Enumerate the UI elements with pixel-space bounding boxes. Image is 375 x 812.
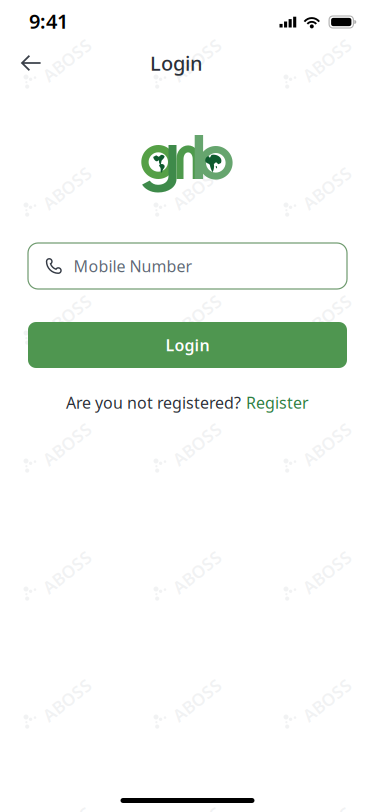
staticText: ABOSS xyxy=(168,432,225,455)
staticText: ABOSS xyxy=(168,304,225,327)
staticText: ABOSS xyxy=(168,176,225,199)
button[interactable]: Login xyxy=(0,322,375,368)
staticText: 9:41 xyxy=(29,8,68,34)
staticText: Mobile Number xyxy=(74,255,193,277)
button[interactable]: Register xyxy=(246,392,309,413)
staticText: ABOSS xyxy=(38,560,95,583)
staticText: ABOSS xyxy=(38,176,95,199)
staticText: ABOSS xyxy=(168,560,225,583)
staticText: ABOSS xyxy=(298,304,355,327)
staticText: Are you not registered? xyxy=(66,392,241,413)
staticText: ABOSS xyxy=(298,176,355,199)
staticText: ABOSS xyxy=(298,560,355,583)
staticText: ABOSS xyxy=(298,688,355,711)
staticText: ABOSS xyxy=(38,688,95,711)
staticText: ABOSS xyxy=(168,48,225,71)
staticText: ABOSS xyxy=(298,432,355,455)
staticText: ABOSS xyxy=(168,688,225,711)
staticText: Register xyxy=(246,392,309,413)
staticText: Login xyxy=(150,50,203,76)
staticText: ABOSS xyxy=(298,48,355,71)
staticText: ABOSS xyxy=(38,432,95,455)
staticText: ABOSS xyxy=(38,304,95,327)
staticText: ABOSS xyxy=(38,48,95,71)
button[interactable]: Back xyxy=(0,45,55,80)
staticText: Login xyxy=(165,334,209,356)
